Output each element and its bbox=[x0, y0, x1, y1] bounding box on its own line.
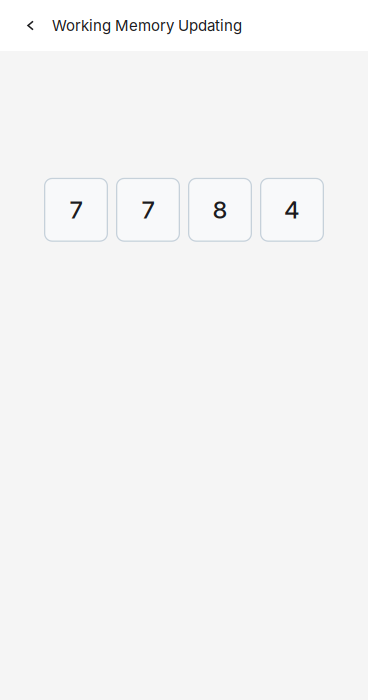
button[interactable]: 7 bbox=[116, 178, 180, 242]
staticText: Working Memory Updating bbox=[52, 16, 242, 34]
button[interactable]: 4 bbox=[260, 178, 324, 242]
button[interactable]: Back bbox=[0, 3, 44, 47]
button[interactable]: 8 bbox=[188, 178, 252, 242]
staticText: 8 bbox=[212, 195, 227, 224]
staticText: 4 bbox=[284, 195, 300, 224]
staticText: 7 bbox=[69, 195, 82, 224]
button[interactable]: 7 bbox=[44, 178, 108, 242]
staticText: 7 bbox=[141, 195, 154, 224]
